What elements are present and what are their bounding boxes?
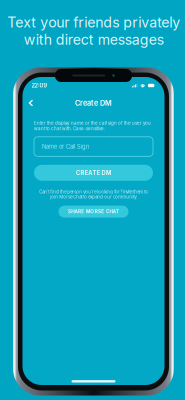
staticText: Can't find the person you're looking for… xyxy=(39,189,148,200)
staticText: SHARE MORSE CHAT xyxy=(68,209,119,214)
staticText: CREATE DM xyxy=(76,169,111,176)
staticText: Name or Call Sign xyxy=(42,143,89,150)
button[interactable]: SHARE MORSE CHAT xyxy=(58,206,128,218)
staticText: Text your friends privately with direct … xyxy=(7,14,180,48)
staticText: Enter the display name or the call sign … xyxy=(34,120,151,131)
staticText: Create DM xyxy=(75,99,112,107)
button[interactable]: Back xyxy=(24,96,37,109)
staticText: 22:09 xyxy=(31,82,47,89)
button[interactable]: CREATE DM xyxy=(34,165,153,181)
